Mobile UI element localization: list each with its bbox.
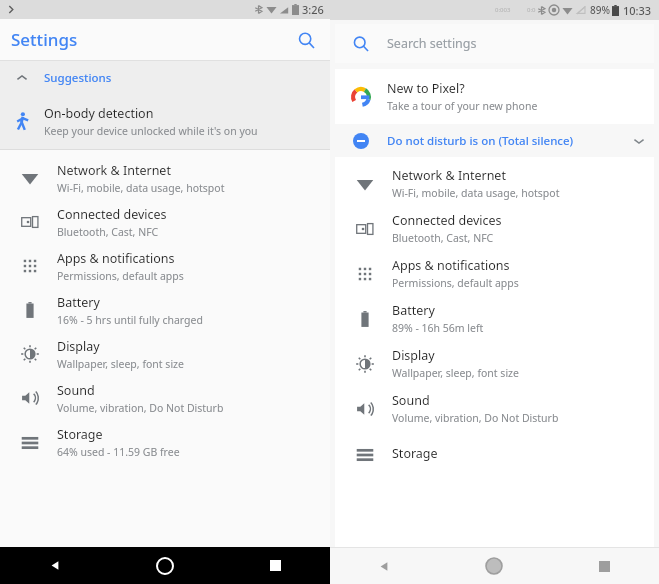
staticText: Network & Internet xyxy=(392,167,506,184)
button[interactable]: Back xyxy=(330,548,439,584)
staticText: Wallpaper, sleep, font size xyxy=(392,366,519,380)
staticText: Apps & notifications xyxy=(392,257,510,274)
staticText: Keep your device unlocked while it's on … xyxy=(44,124,258,138)
staticText: Display xyxy=(392,347,435,364)
button[interactable]: Battery xyxy=(0,288,330,332)
staticText: Wi-Fi, mobile, data usage, hotspot xyxy=(57,181,225,195)
staticText: New to Pixel? xyxy=(387,80,465,97)
button[interactable]: Connected devices xyxy=(335,206,654,251)
button[interactable]: Search settings xyxy=(335,24,654,63)
staticText: Battery xyxy=(57,294,100,311)
staticText: 3:26 xyxy=(302,2,324,17)
staticText: Network & Internet xyxy=(57,162,171,179)
staticText: Volume, vibration, Do Not Disturb xyxy=(57,401,224,415)
staticText: Volume, vibration, Do Not Disturb xyxy=(392,411,559,425)
staticText: Storage xyxy=(392,445,438,462)
button[interactable]: Sound xyxy=(0,376,330,420)
staticText: Permissions, default apps xyxy=(57,269,184,283)
button[interactable]: Suggestions xyxy=(0,61,330,94)
staticText: 16% - 5 hrs until fully charged xyxy=(57,313,203,327)
button[interactable]: Network & Internet xyxy=(335,161,654,206)
staticText: 64% used - 11.59 GB free xyxy=(57,445,180,459)
button[interactable]: Storage xyxy=(0,420,330,464)
button[interactable]: Home xyxy=(110,547,220,584)
staticText: 89% - 16h 56m left xyxy=(392,321,484,335)
staticText: Take a tour of your new phone xyxy=(387,99,538,113)
button[interactable]: On-body detection xyxy=(0,94,330,149)
staticText: 0:003 xyxy=(495,6,511,14)
button[interactable]: Network & Internet xyxy=(0,156,330,200)
staticText: Do not disturb is on (Total silence) xyxy=(387,133,574,149)
staticText: 89% xyxy=(590,3,610,17)
staticText: Suggestions xyxy=(44,70,112,86)
staticText: Apps & notifications xyxy=(57,250,175,267)
staticText: Sound xyxy=(57,382,95,399)
staticText: Bluetooth, Cast, NFC xyxy=(392,231,494,245)
staticText: Bluetooth, Cast, NFC xyxy=(57,225,159,239)
button[interactable]: Display xyxy=(0,332,330,376)
staticText: Wi-Fi, mobile, data usage, hotspot xyxy=(392,186,560,200)
staticText: Search settings xyxy=(387,35,477,52)
button[interactable]: Do not disturb is on (Total silence) xyxy=(335,124,654,157)
button[interactable]: Battery xyxy=(335,296,654,341)
staticText: Settings xyxy=(11,28,78,51)
staticText: Sound xyxy=(392,392,430,409)
button[interactable]: Storage xyxy=(335,431,654,476)
button[interactable]: Apps & notifications xyxy=(0,244,330,288)
button[interactable]: New to Pixel? xyxy=(335,69,654,124)
button[interactable]: Display xyxy=(335,341,654,386)
staticText: On-body detection xyxy=(44,105,154,122)
button[interactable]: Back xyxy=(0,547,110,584)
staticText: Connected devices xyxy=(392,212,502,229)
staticText: Display xyxy=(57,338,100,355)
button[interactable]: Search xyxy=(290,24,322,56)
staticText: 0:0 xyxy=(527,6,536,14)
button[interactable]: Apps & notifications xyxy=(335,251,654,296)
button[interactable]: Recents xyxy=(549,548,659,584)
staticText: Storage xyxy=(57,426,103,443)
staticText: 10:33 xyxy=(623,3,652,18)
button[interactable]: Sound xyxy=(335,386,654,431)
staticText: Wallpaper, sleep, font size xyxy=(57,357,184,371)
staticText: Connected devices xyxy=(57,206,167,223)
button[interactable]: Home xyxy=(439,548,549,584)
staticText: Battery xyxy=(392,302,435,319)
staticText: Permissions, default apps xyxy=(392,276,519,290)
button[interactable]: Recents xyxy=(220,547,330,584)
button[interactable]: Connected devices xyxy=(0,200,330,244)
